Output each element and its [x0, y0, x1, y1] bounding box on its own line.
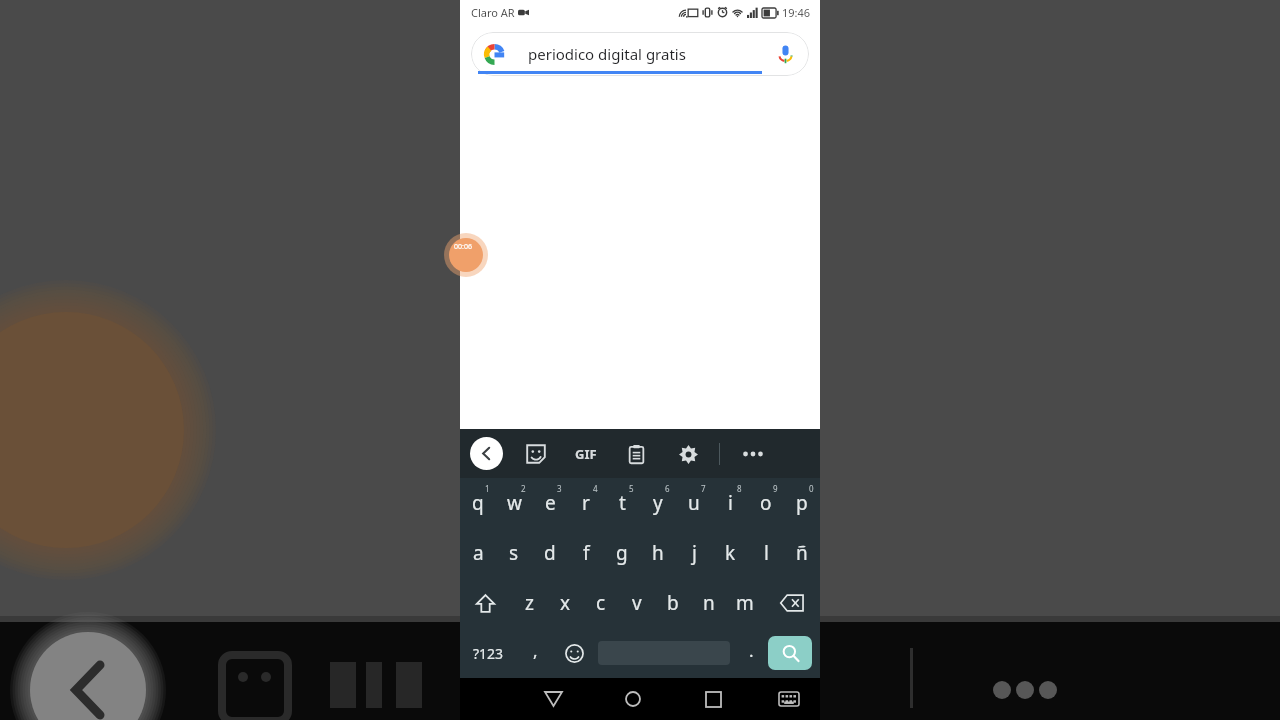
button[interactable]: Clipboard [617, 435, 655, 473]
button[interactable]: Voice search [772, 41, 798, 67]
button[interactable]: h [640, 528, 676, 578]
staticText: 6 [665, 483, 670, 494]
staticText: k [725, 540, 736, 566]
staticText: ?123 [473, 644, 504, 663]
staticText: 4 [593, 483, 598, 494]
button[interactable]: p [784, 478, 820, 528]
staticText: p [796, 490, 808, 516]
staticText: . [749, 639, 754, 662]
button[interactable]: r [568, 478, 604, 528]
button[interactable]: k [712, 528, 748, 578]
staticText: x [560, 590, 571, 616]
staticText: Claro AR [471, 5, 515, 20]
button[interactable]: s [496, 528, 532, 578]
staticText: q [472, 490, 484, 516]
staticText: 19:46 [782, 5, 811, 20]
staticText: o [760, 490, 772, 516]
staticText: n [703, 590, 715, 616]
staticText: 7 [701, 483, 706, 494]
staticText: r [582, 490, 590, 516]
button[interactable]: o [748, 478, 784, 528]
button[interactable]: Emoji [554, 628, 594, 678]
button[interactable]: y [640, 478, 676, 528]
staticText: 00:06 [454, 242, 472, 252]
button[interactable]: t [604, 478, 640, 528]
staticText: m [736, 590, 754, 616]
button[interactable]: q [460, 478, 496, 528]
staticText: , [533, 639, 538, 662]
staticText: z [525, 590, 534, 616]
staticText: periodico digital gratis [528, 44, 686, 64]
staticText: b [667, 590, 679, 616]
staticText: c [596, 590, 606, 616]
button[interactable]: Shift [460, 578, 511, 628]
button[interactable]: z [511, 578, 547, 628]
staticText: a [473, 540, 484, 566]
button[interactable]: b [655, 578, 691, 628]
button[interactable]: Home [610, 678, 656, 720]
staticText: 8 [737, 483, 742, 494]
button[interactable]: v [619, 578, 655, 628]
button[interactable]: l [748, 528, 784, 578]
button[interactable]: , [516, 628, 554, 678]
button[interactable]: e [532, 478, 568, 528]
button[interactable]: c [583, 578, 619, 628]
staticText: GIF [575, 445, 597, 463]
button[interactable]: g [604, 528, 640, 578]
staticText: l [764, 540, 769, 566]
staticText: i [728, 490, 733, 516]
staticText: y [653, 490, 663, 516]
staticText: s [509, 540, 519, 566]
button[interactable]: n [691, 578, 727, 628]
staticText: v [632, 590, 642, 616]
button[interactable]: f [568, 528, 604, 578]
button[interactable]: u [676, 478, 712, 528]
staticText: 1 [485, 483, 490, 494]
button[interactable]: d [532, 528, 568, 578]
staticText: g [616, 540, 628, 566]
button[interactable]: Backspace [763, 578, 820, 628]
button[interactable]: More options [734, 435, 772, 473]
staticText: w [507, 490, 522, 516]
button[interactable]: Back [530, 678, 576, 720]
staticText: e [545, 490, 556, 516]
button[interactable]: Hide keyboard [766, 678, 812, 720]
button[interactable]: . [734, 628, 768, 678]
staticText: 3 [557, 483, 562, 494]
staticText: 5 [629, 483, 634, 494]
staticText: f [583, 540, 590, 566]
button[interactable]: a [460, 528, 496, 578]
button[interactable]: x [547, 578, 583, 628]
staticText: d [544, 540, 556, 566]
staticText: 0 [809, 483, 814, 494]
staticText: 9 [773, 483, 778, 494]
staticText: ñ [796, 540, 808, 566]
button[interactable]: j [676, 528, 712, 578]
button[interactable]: w [496, 478, 532, 528]
staticText: j [692, 540, 697, 566]
button[interactable]: i [712, 478, 748, 528]
button[interactable]: Search [768, 636, 812, 670]
staticText: 2 [521, 483, 526, 494]
staticText: h [652, 540, 664, 566]
button[interactable]: periodico digital gratis [471, 32, 809, 76]
button[interactable]: Recent apps [690, 678, 736, 720]
button[interactable]: ñ [784, 528, 820, 578]
button[interactable]: GIF [567, 435, 605, 473]
button[interactable]: ?123 [460, 628, 516, 678]
button[interactable]: m [727, 578, 763, 628]
button[interactable]: Settings [669, 435, 707, 473]
button[interactable]: Back [470, 437, 503, 470]
button[interactable]: Stickers [517, 435, 555, 473]
staticText: u [688, 490, 700, 516]
staticText: t [619, 490, 626, 516]
